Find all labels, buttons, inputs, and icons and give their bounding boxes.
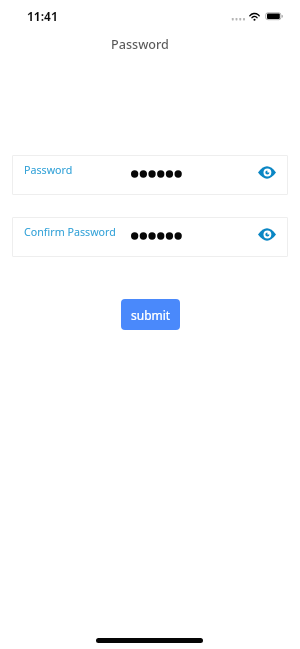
other: Cellular signal (231, 17, 246, 22)
button[interactable]: Show password (258, 167, 276, 178)
button[interactable]: Show password (258, 229, 276, 240)
staticText: Password (24, 163, 73, 178)
button[interactable]: Confirm Password (12, 217, 288, 257)
staticText: submit (131, 307, 171, 323)
staticText: Confirm Password (24, 225, 116, 240)
other: Wi-Fi (246, 10, 263, 22)
staticText: Password (111, 36, 169, 53)
other: Battery (264, 11, 285, 22)
staticText: 11:41 (27, 8, 58, 24)
button[interactable]: submit (121, 299, 180, 330)
button[interactable]: Password (12, 155, 288, 195)
